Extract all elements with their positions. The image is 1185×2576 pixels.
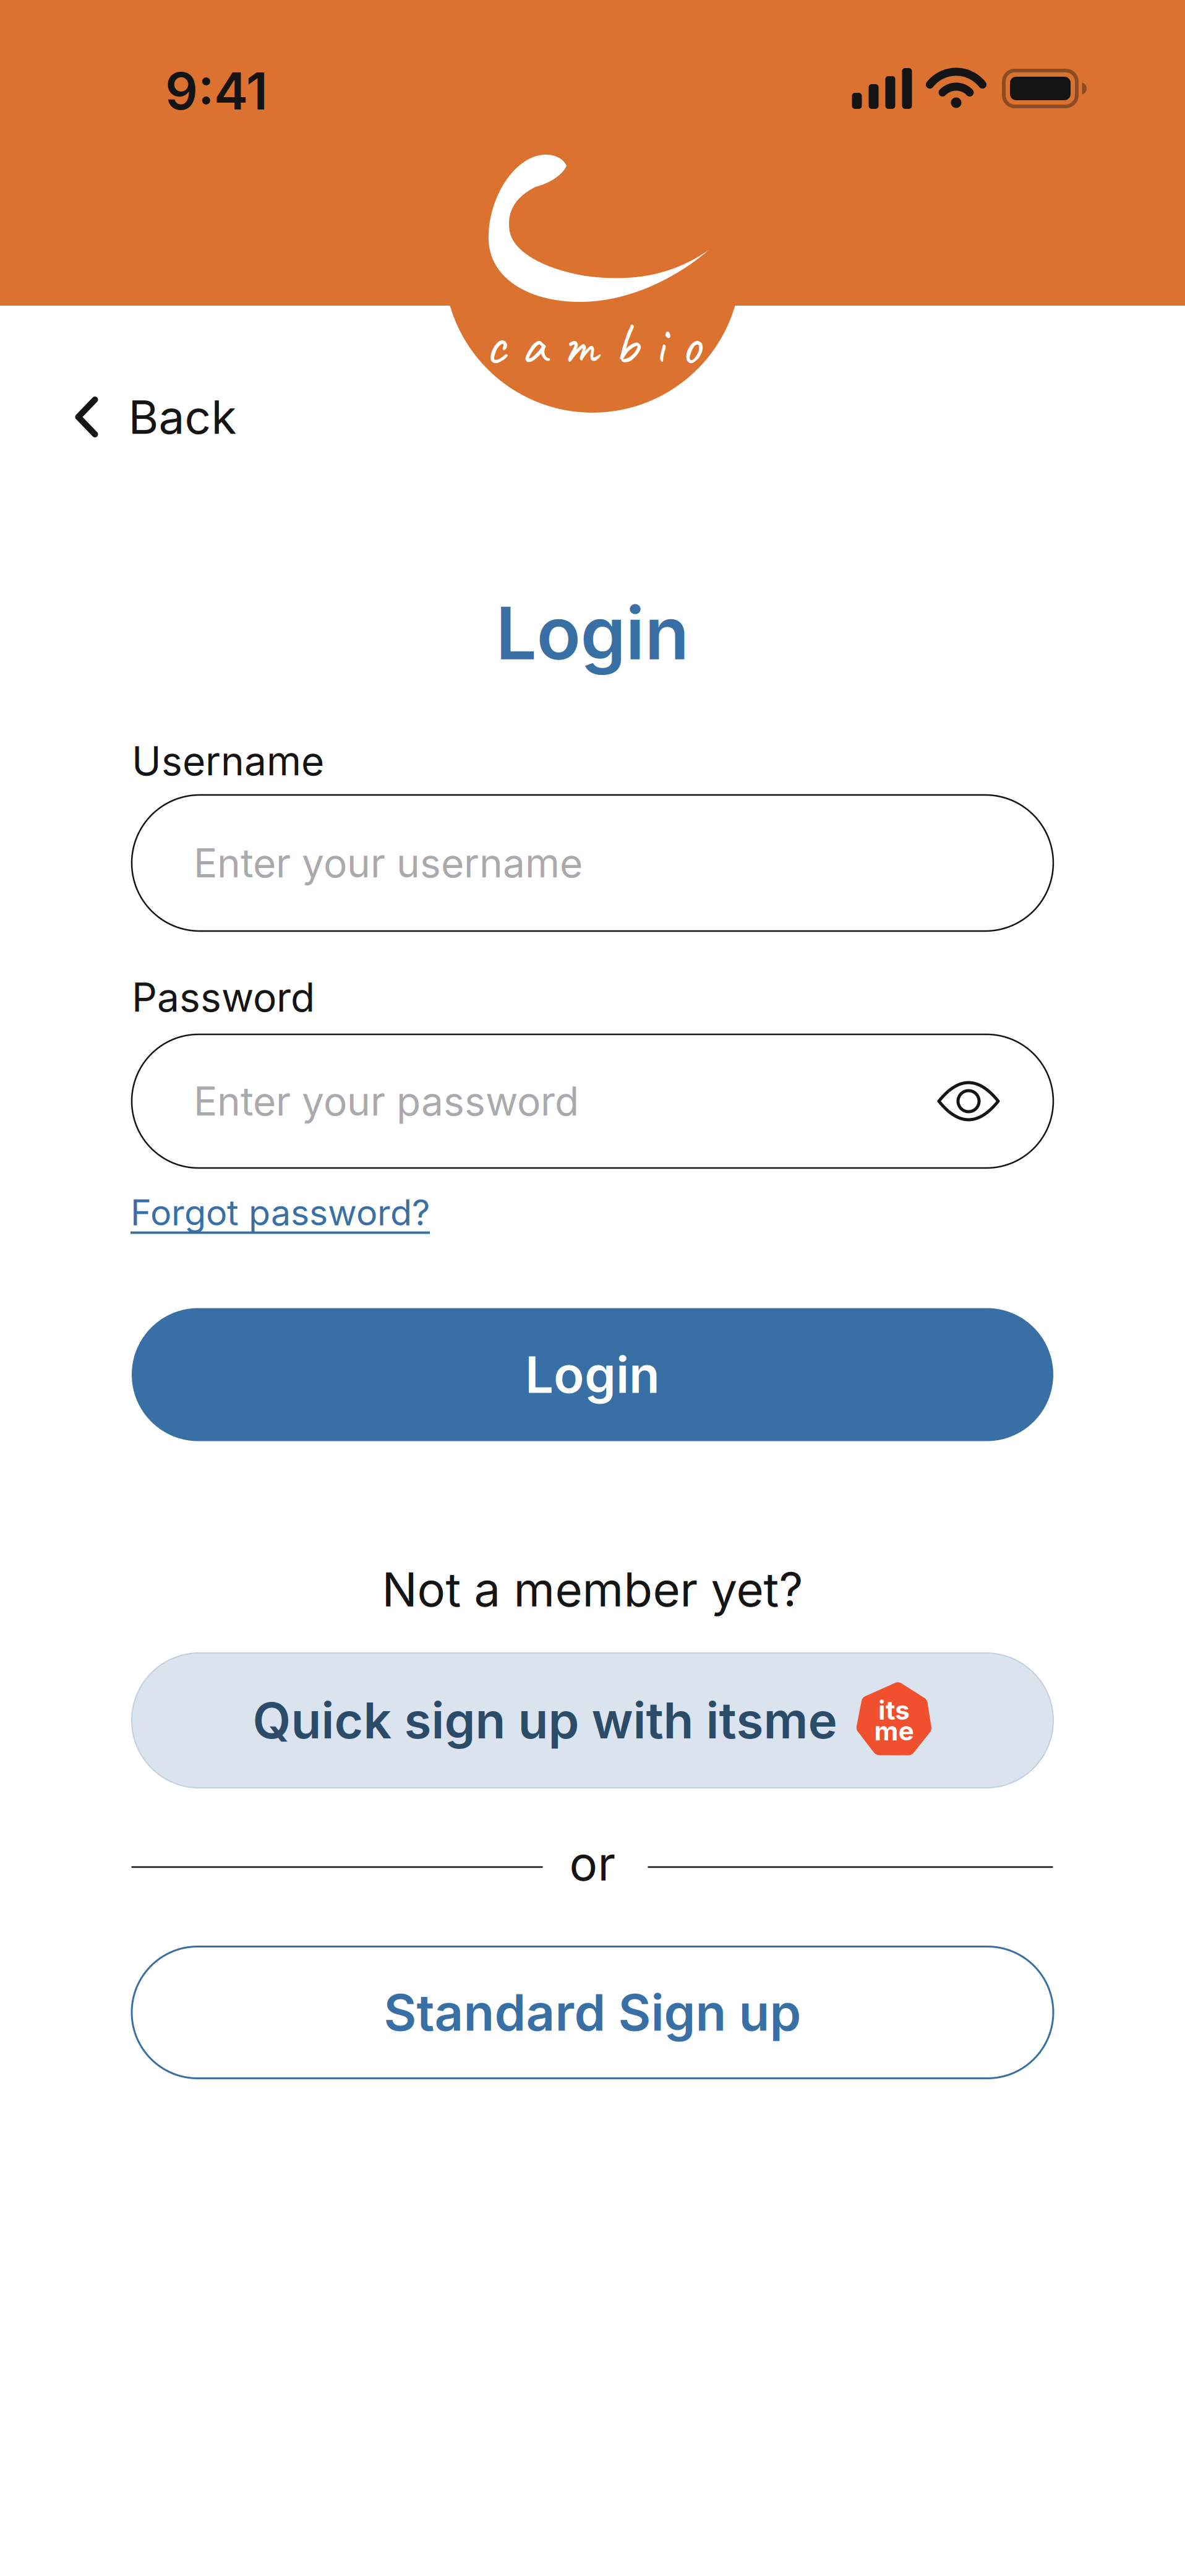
staticText: Login [496, 589, 689, 677]
staticText: Username [132, 737, 324, 785]
staticText: me [874, 1715, 914, 1747]
staticText: Standard Sign up [384, 1982, 801, 2043]
staticText: its [878, 1694, 910, 1726]
button[interactable]: Back [75, 389, 237, 445]
button[interactable]: Forgot password? [130, 1191, 430, 1234]
staticText: Back [128, 389, 237, 445]
staticText: Enter your username [194, 839, 583, 887]
staticText: Not a member yet? [382, 1561, 803, 1618]
button[interactable]: Standard Sign up [132, 1947, 1053, 2078]
button[interactable]: Login [132, 1308, 1053, 1441]
staticText: Quick sign up with itsme [253, 1690, 837, 1750]
button[interactable]: Quick sign up with itsme [132, 1653, 1053, 1788]
staticText: or [569, 1835, 616, 1892]
staticText: cambio [485, 307, 700, 381]
staticText: Login [525, 1344, 660, 1405]
staticText: Forgot password? [130, 1191, 430, 1234]
button[interactable]: Show password [936, 1080, 1001, 1122]
staticText: Password [132, 973, 315, 1021]
staticText: 9:41 [165, 60, 268, 122]
staticText: Enter your password [194, 1077, 579, 1125]
